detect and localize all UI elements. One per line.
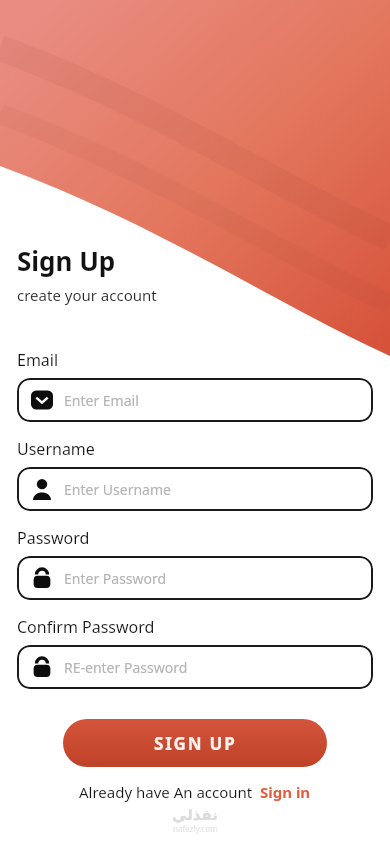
other: Username	[31, 478, 53, 500]
button[interactable]: Email	[17, 378, 373, 422]
staticText: nafezly.com	[173, 823, 218, 834]
staticText: Sign Up	[17, 243, 116, 278]
staticText: Enter Username	[64, 480, 171, 499]
staticText: Sign in	[260, 782, 311, 802]
other: Email	[31, 389, 53, 411]
button[interactable]: Confirm Password	[17, 645, 373, 689]
staticText: Password	[17, 527, 90, 549]
staticText: نفذلي	[172, 806, 218, 823]
button[interactable]: SIGN UP	[63, 719, 327, 767]
other: Confirm Password	[31, 656, 53, 678]
staticText: Confirm Password	[17, 616, 155, 638]
staticText: Username	[17, 438, 95, 460]
staticText: Enter Email	[64, 391, 139, 410]
staticText: create your account	[17, 285, 157, 305]
staticText: SIGN UP	[154, 732, 237, 755]
staticText: RE-enter Password	[64, 658, 188, 677]
staticText: Already have An account	[79, 782, 253, 802]
staticText: Email	[17, 349, 59, 371]
other: Password	[31, 567, 53, 589]
button[interactable]: Sign in	[260, 782, 311, 802]
button[interactable]: Password	[17, 556, 373, 600]
staticText: Enter Password	[64, 569, 167, 588]
button[interactable]: Username	[17, 467, 373, 511]
